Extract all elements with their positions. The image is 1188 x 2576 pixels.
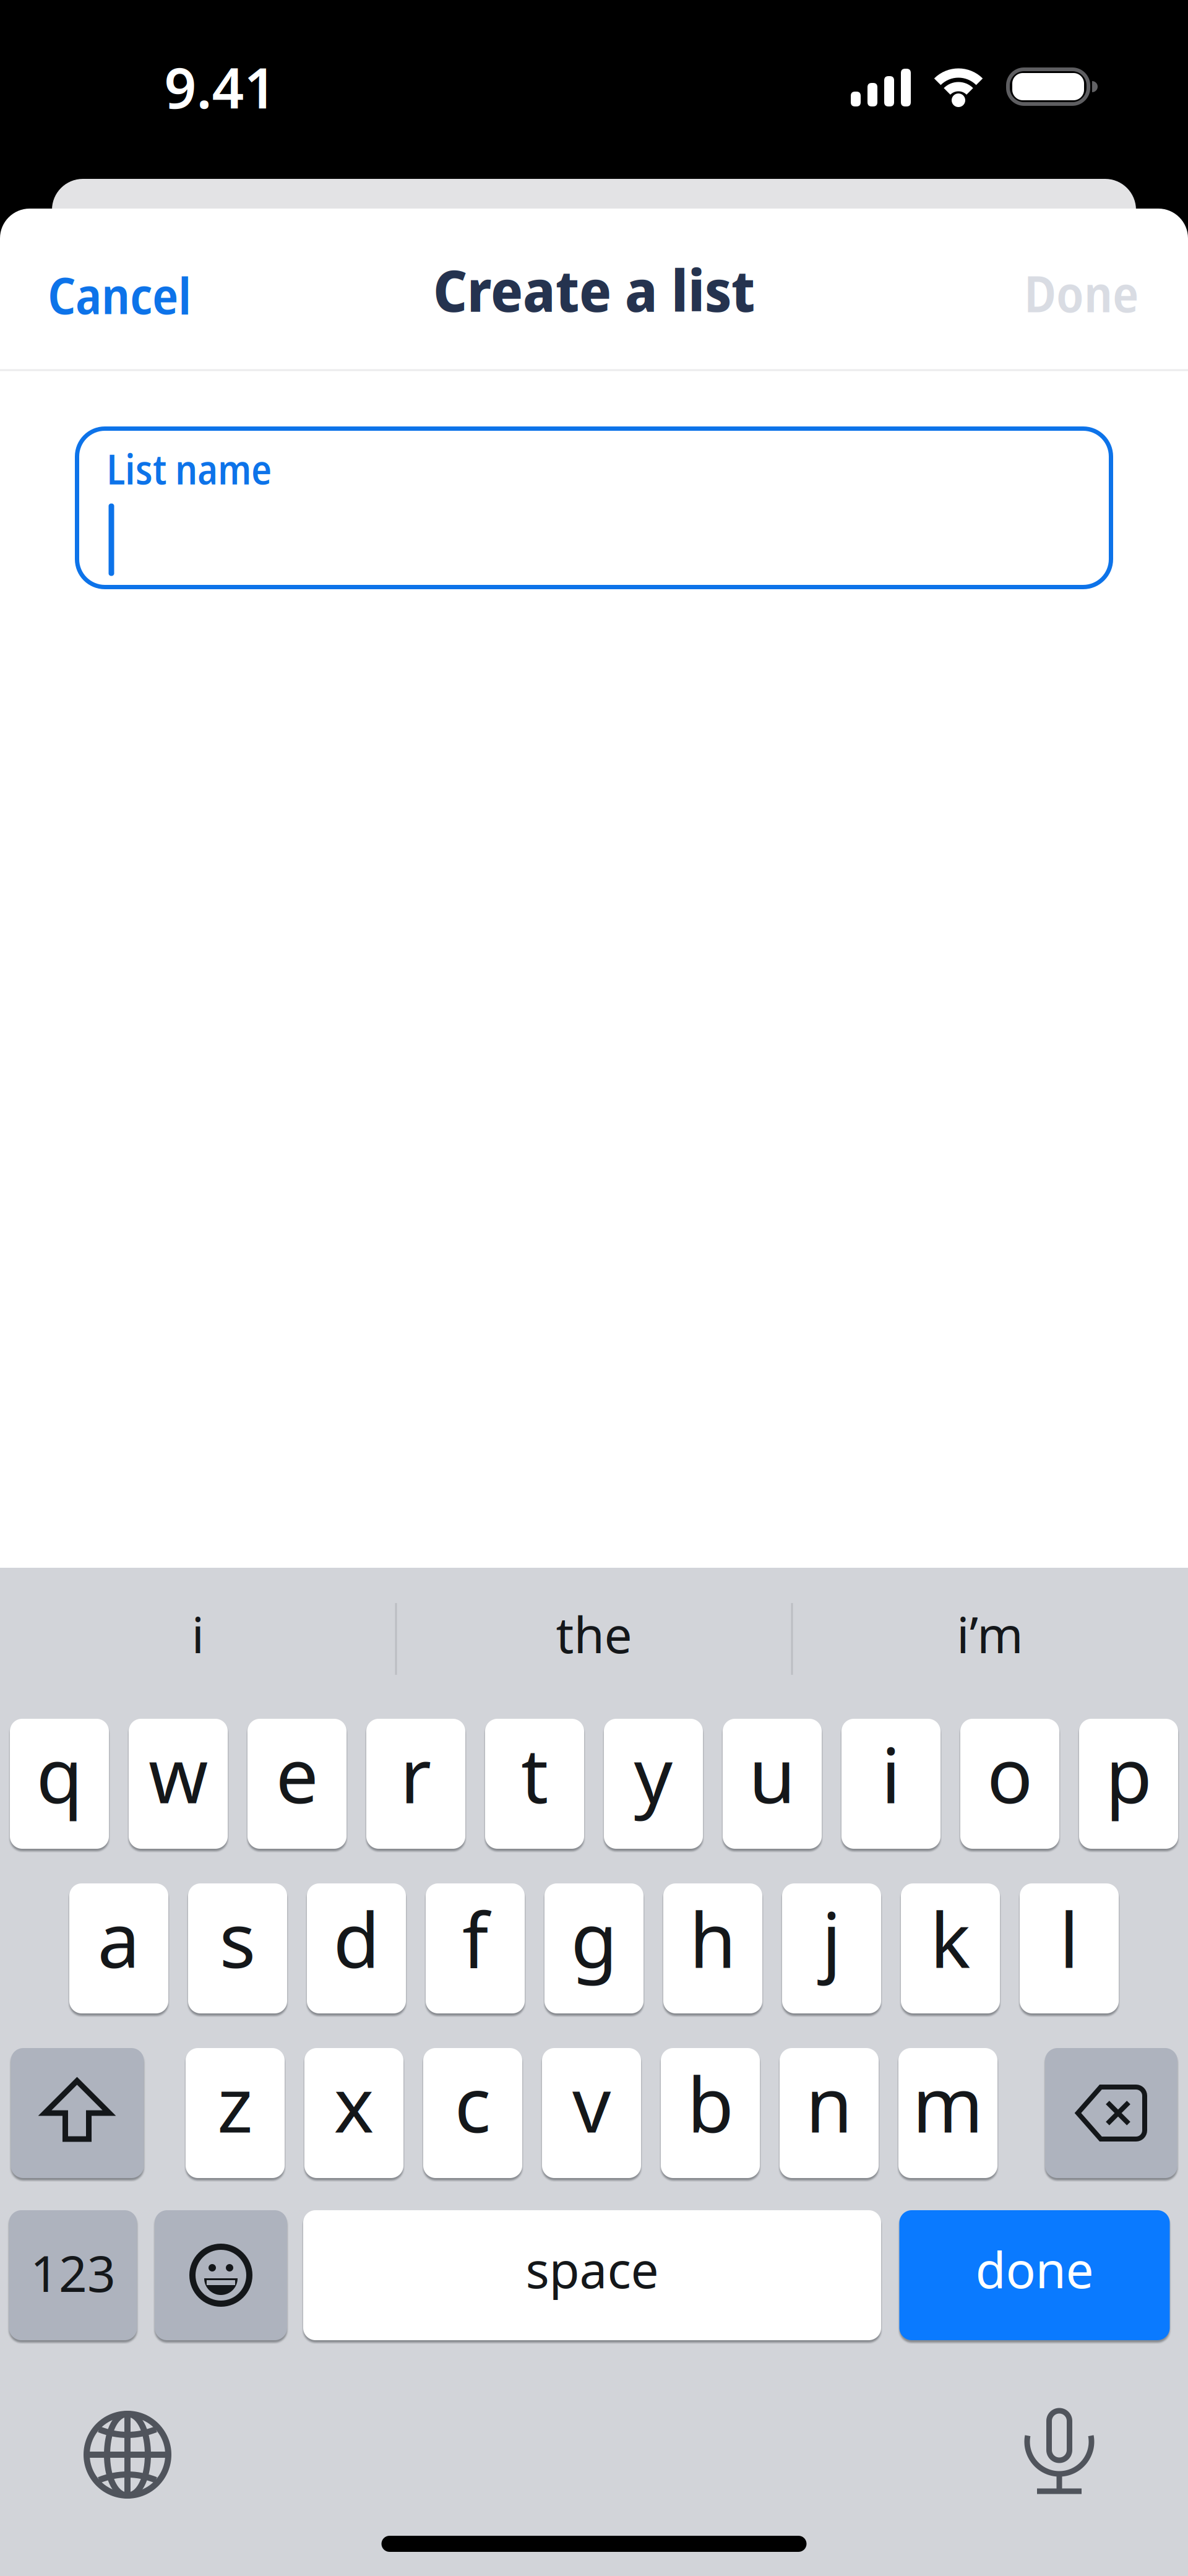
button[interactable]: c [423,2048,522,2178]
staticText: e [276,1723,318,1824]
button[interactable]: w [129,1719,228,1849]
button[interactable]: o [960,1719,1059,1849]
button[interactable]: f [426,1883,525,2013]
button[interactable]: e [247,1719,346,1849]
staticText: x [334,2053,374,2154]
staticText: List name [106,440,272,497]
staticText: the [556,1601,632,1667]
staticText: s [219,1888,256,1989]
staticText: j [822,1888,841,1989]
staticText: u [749,1723,796,1824]
button[interactable]: x [304,2048,403,2178]
button[interactable]: m [898,2048,997,2178]
button[interactable]: j [782,1883,881,2013]
staticText: v [572,2053,611,2154]
button[interactable]: r [366,1719,465,1849]
button[interactable]: v [542,2048,641,2178]
staticText: t [521,1723,548,1824]
staticText: Cancel [48,260,191,329]
button[interactable]: p [1079,1719,1178,1849]
button[interactable]: y [604,1719,703,1849]
button[interactable]: Dictation [1010,2407,1109,2496]
button[interactable]: Next keyboard [78,2405,177,2504]
staticText: m [912,2053,984,2154]
staticText: n [806,2053,853,2154]
button[interactable]: s [188,1883,287,2013]
staticText: a [97,1888,140,1989]
staticText: space [526,2236,659,2302]
staticText: i [192,1601,204,1667]
staticText: q [36,1723,83,1824]
button[interactable]: the [408,1578,780,1690]
staticText: r [400,1723,432,1824]
staticText: w [148,1723,208,1824]
staticText: 9.41 [164,49,276,124]
staticText: f [462,1888,488,1989]
staticText: b [687,2053,734,2154]
staticText: k [930,1888,971,1989]
button[interactable]: z [186,2048,285,2178]
button[interactable]: a [69,1883,168,2013]
button[interactable]: i [841,1719,940,1849]
button[interactable]: b [661,2048,760,2178]
staticText: g [571,1888,617,1989]
staticText: i [881,1723,901,1824]
staticText: i’m [957,1601,1023,1667]
staticText: Create a list [433,251,755,328]
button[interactable]: q [10,1719,109,1849]
staticText: 123 [30,2240,116,2306]
staticText: y [634,1723,673,1824]
button[interactable]: i’m [804,1578,1176,1690]
button[interactable]: 123 [9,2210,137,2340]
button[interactable]: done [899,2210,1170,2340]
staticText: h [689,1888,736,1989]
button[interactable]: space [303,2210,881,2340]
button[interactable]: l [1020,1883,1119,2013]
staticText: c [454,2053,491,2154]
button[interactable]: List name [75,426,1113,589]
button[interactable]: d [307,1883,406,2013]
staticText: p [1105,1723,1152,1824]
button[interactable]: Delete [1045,2048,1177,2178]
button[interactable]: Done [829,256,1138,330]
button[interactable]: Shift [11,2048,144,2178]
staticText: z [217,2053,253,2154]
staticText: Done [1024,258,1138,327]
button[interactable]: i [12,1578,384,1690]
staticText: l [1059,1888,1079,1989]
button[interactable]: g [544,1883,643,2013]
staticText: done [975,2236,1094,2302]
button[interactable]: n [780,2048,879,2178]
button[interactable]: u [723,1719,822,1849]
button[interactable]: Emoji [155,2210,287,2340]
button[interactable]: Cancel [48,257,357,332]
button[interactable]: h [663,1883,762,2013]
staticText: o [987,1723,1033,1824]
staticText: d [333,1888,380,1989]
button[interactable]: t [485,1719,584,1849]
button[interactable]: k [901,1883,1000,2013]
